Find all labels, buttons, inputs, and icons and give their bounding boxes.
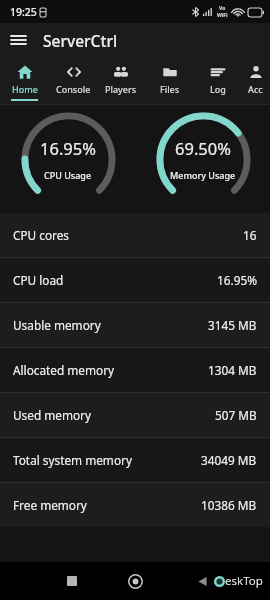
- staticText: Free memory: [13, 497, 87, 513]
- button[interactable]: Acc: [241, 57, 270, 104]
- staticText: Usable memory: [13, 317, 101, 333]
- button[interactable]: CPU load: [0, 258, 270, 302]
- staticText: CPU cores: [13, 227, 70, 243]
- staticText: CPU load: [13, 272, 64, 288]
- staticText: ServerCtrl: [43, 30, 118, 51]
- staticText: Used memory: [13, 407, 91, 423]
- button[interactable]: Used memory: [0, 393, 270, 437]
- staticText: Console: [56, 83, 91, 95]
- staticText: Total system memory: [13, 452, 132, 468]
- button[interactable]: Files: [145, 57, 193, 104]
- staticText: 10386 MB: [201, 497, 257, 513]
- staticText: Files: [160, 83, 180, 95]
- button[interactable]: Console: [49, 57, 97, 104]
- staticText: Log: [210, 83, 226, 95]
- staticText: 507 MB: [215, 407, 257, 423]
- button[interactable]: Recent apps: [60, 569, 84, 593]
- staticText: WiFi: [217, 12, 228, 19]
- staticText: 34049 MB: [201, 452, 257, 468]
- button[interactable]: CPU cores: [0, 213, 270, 257]
- staticText: Vo: [219, 5, 226, 12]
- staticText: eskTop: [225, 573, 263, 589]
- staticText: CPU Usage: [44, 169, 92, 181]
- staticText: Acc: [248, 83, 263, 95]
- button[interactable]: Open navigation menu: [0, 23, 36, 57]
- staticText: Home: [12, 83, 38, 95]
- staticText: Players: [105, 83, 137, 95]
- button[interactable]: Total system memory: [0, 438, 270, 482]
- button[interactable]: Back: [190, 569, 214, 593]
- staticText: 69.50%: [175, 137, 231, 159]
- staticText: 16.95%: [217, 272, 257, 288]
- button[interactable]: Allocated memory: [0, 348, 270, 392]
- staticText: Memory Usage: [170, 169, 236, 181]
- button[interactable]: Players: [97, 57, 145, 104]
- button[interactable]: Usable memory: [0, 303, 270, 347]
- button[interactable]: Home: [123, 569, 147, 593]
- button[interactable]: Free memory: [0, 483, 270, 527]
- button[interactable]: Home: [0, 57, 49, 104]
- staticText: Allocated memory: [13, 362, 115, 378]
- button[interactable]: Log: [193, 57, 241, 104]
- staticText: 16.95%: [40, 137, 96, 159]
- staticText: 3145 MB: [208, 317, 257, 333]
- staticText: 19:25: [10, 5, 37, 19]
- staticText: 16: [243, 227, 257, 243]
- staticText: 1304 MB: [208, 362, 257, 378]
